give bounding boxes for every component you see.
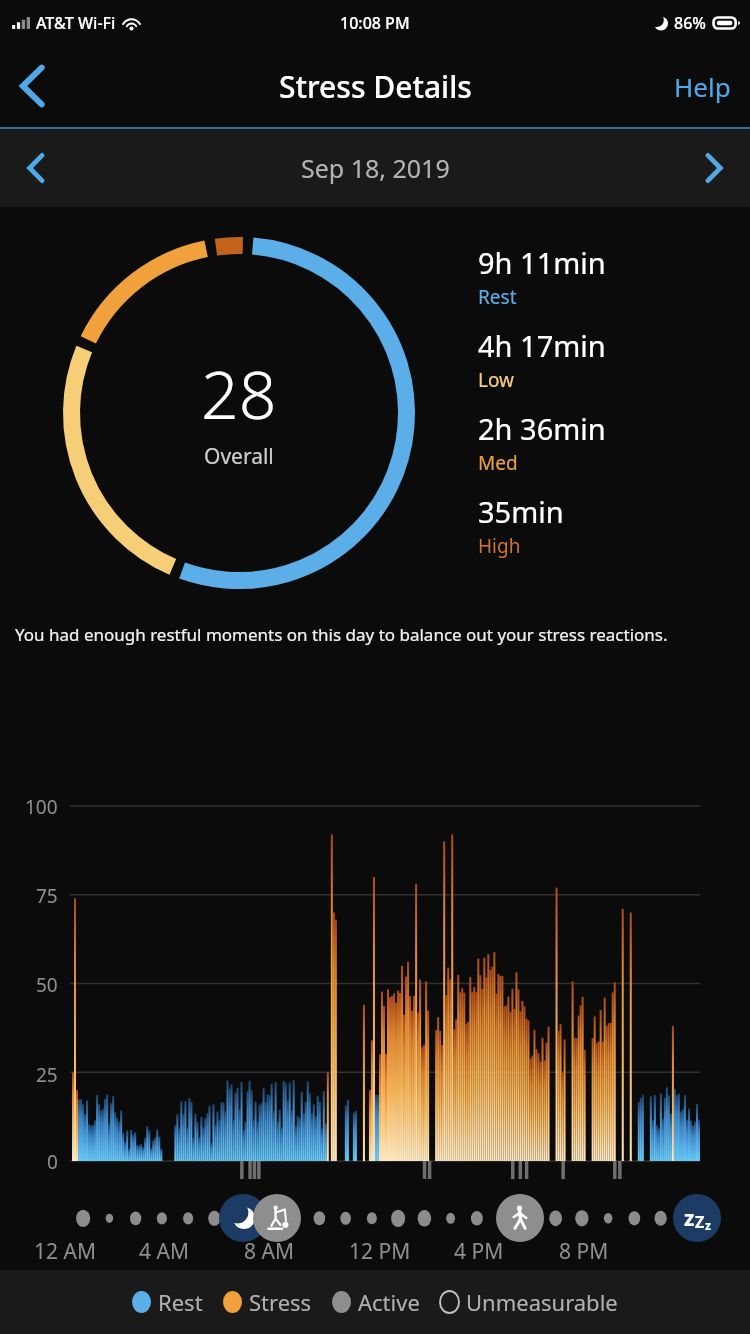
staticText: 9h 11min: [478, 243, 606, 282]
staticText: Z: [695, 1211, 705, 1233]
staticText: 8 PM: [559, 1237, 609, 1266]
button[interactable]: Rest: [132, 1281, 203, 1323]
button[interactable]: Walk: [496, 1194, 544, 1242]
staticText: 4 AM: [139, 1237, 189, 1266]
staticText: 0: [47, 1149, 58, 1175]
staticText: 12 PM: [349, 1237, 411, 1266]
staticText: AT&T Wi-Fi: [36, 12, 116, 34]
staticText: Med: [478, 450, 518, 476]
staticText: Active: [358, 1287, 420, 1317]
staticText: 35min: [478, 492, 564, 531]
staticText: Rest: [158, 1287, 203, 1317]
staticText: Stress: [249, 1287, 312, 1317]
staticText: 8 AM: [244, 1237, 294, 1266]
button[interactable]: Sleep: [219, 1194, 267, 1242]
staticText: Overall: [204, 442, 274, 471]
button[interactable]: Back: [0, 54, 64, 118]
staticText: 75: [36, 883, 58, 909]
staticText: 86%: [674, 12, 706, 34]
staticText: 28: [201, 348, 277, 438]
button[interactable]: Sleep: [673, 1194, 721, 1242]
staticText: z: [684, 1204, 695, 1233]
staticText: Low: [478, 367, 515, 393]
staticText: 12 AM: [34, 1237, 96, 1266]
staticText: Help: [674, 69, 731, 104]
button[interactable]: Next day: [678, 132, 750, 204]
staticText: You had enough restful moments on this d…: [15, 623, 668, 646]
staticText: High: [478, 533, 521, 559]
button[interactable]: Help: [655, 54, 750, 118]
button[interactable]: Unmeasurable: [440, 1281, 618, 1323]
button[interactable]: Elliptical workout: [253, 1194, 301, 1242]
staticText: Sep 18, 2019: [301, 151, 450, 185]
staticText: 50: [36, 972, 58, 998]
button[interactable]: Active: [332, 1281, 420, 1323]
staticText: 4h 17min: [478, 326, 606, 365]
staticText: 2h 36min: [478, 409, 606, 448]
staticText: Stress Details: [279, 66, 472, 107]
staticText: 4 PM: [454, 1237, 504, 1266]
staticText: 25: [36, 1062, 58, 1088]
button[interactable]: Previous day: [0, 132, 72, 204]
staticText: Unmeasurable: [466, 1287, 618, 1317]
staticText: Rest: [478, 284, 517, 310]
staticText: z: [705, 1217, 711, 1233]
staticText: 100: [25, 794, 58, 820]
staticText: 10:08 PM: [340, 12, 410, 34]
button[interactable]: Stress: [223, 1281, 312, 1323]
